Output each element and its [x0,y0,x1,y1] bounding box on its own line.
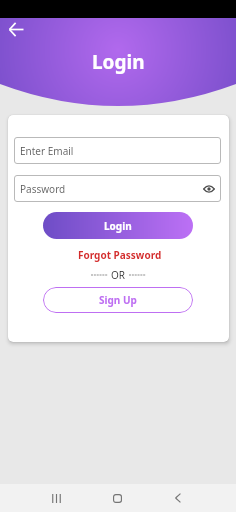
staticText: OR [111,268,126,282]
button[interactable]: Password [14,175,221,202]
staticText: Login [92,49,145,75]
button[interactable]: Home [106,487,128,509]
button[interactable]: Recent apps [45,487,67,509]
button[interactable]: Back [167,487,189,509]
button[interactable]: Show password [199,179,219,199]
button[interactable]: Enter Email [14,137,221,164]
button[interactable]: Login [43,212,193,239]
staticText: Sign Up [99,293,137,307]
staticText: Enter Email [20,144,74,158]
button[interactable]: Back [2,15,30,43]
staticText: Password [20,182,66,196]
staticText: Forgot Password [78,248,162,262]
staticText: Login [104,219,132,233]
button[interactable]: Forgot Password [45,247,195,263]
button[interactable]: Sign Up [43,287,193,313]
